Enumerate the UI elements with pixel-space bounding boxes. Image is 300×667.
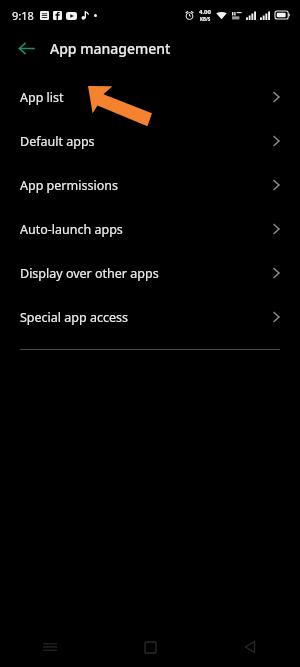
button[interactable]: Special app access: [0, 295, 300, 339]
staticText: App permissions: [20, 177, 118, 194]
button[interactable]: Default apps: [0, 119, 300, 163]
staticText: Auto-launch apps: [20, 221, 123, 238]
button[interactable]: Home: [100, 627, 200, 667]
button[interactable]: Back: [200, 627, 300, 667]
staticText: KB/S: [200, 16, 211, 22]
staticText: 9:18: [12, 8, 34, 23]
staticText: Default apps: [20, 133, 95, 150]
button[interactable]: App permissions: [0, 163, 300, 207]
button[interactable]: Back: [10, 32, 42, 64]
staticText: 4.00: [199, 8, 211, 16]
button[interactable]: App list: [0, 75, 300, 119]
staticText: Display over other apps: [20, 265, 159, 282]
button[interactable]: Display over other apps: [0, 251, 300, 295]
button[interactable]: Auto-launch apps: [0, 207, 300, 251]
staticText: Special app access: [20, 309, 128, 326]
staticText: App list: [20, 89, 64, 106]
button[interactable]: Recent apps: [0, 627, 100, 667]
staticText: App management: [50, 39, 171, 58]
